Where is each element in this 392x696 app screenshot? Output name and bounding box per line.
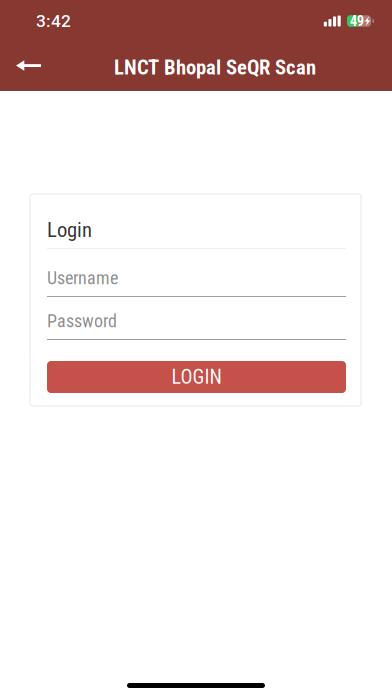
staticText: LOGIN (171, 365, 221, 389)
staticText: LNCT Bhopal SeQR Scan (114, 55, 316, 80)
staticText: 3:42 (36, 11, 71, 31)
button[interactable]: Back (0, 42, 56, 91)
staticText: Password (47, 310, 117, 332)
staticText: Username (47, 267, 118, 289)
button[interactable]: LOGIN (47, 361, 346, 393)
staticText: Login (47, 218, 92, 242)
staticText: 49 (350, 12, 364, 30)
